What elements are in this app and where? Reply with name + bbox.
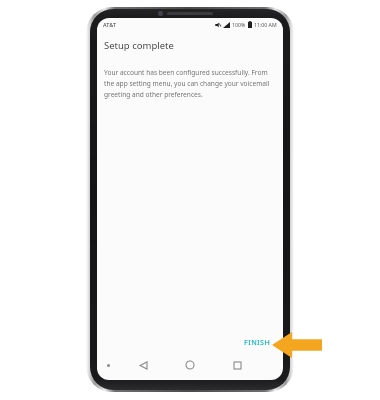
button[interactable]: Back [135,357,151,373]
staticText: 100% [232,21,246,28]
button[interactable]: Notification dot [107,364,110,367]
staticText: FINISH [244,337,271,347]
button[interactable]: FINISH [238,332,277,352]
staticText: Setup complete [104,39,174,52]
button[interactable]: Home [182,357,198,373]
staticText: 11:00 AM [254,21,277,28]
staticText: AT&T [103,21,117,28]
button[interactable]: Recent apps [229,357,245,373]
staticText: Your account has been configured success… [104,68,274,99]
